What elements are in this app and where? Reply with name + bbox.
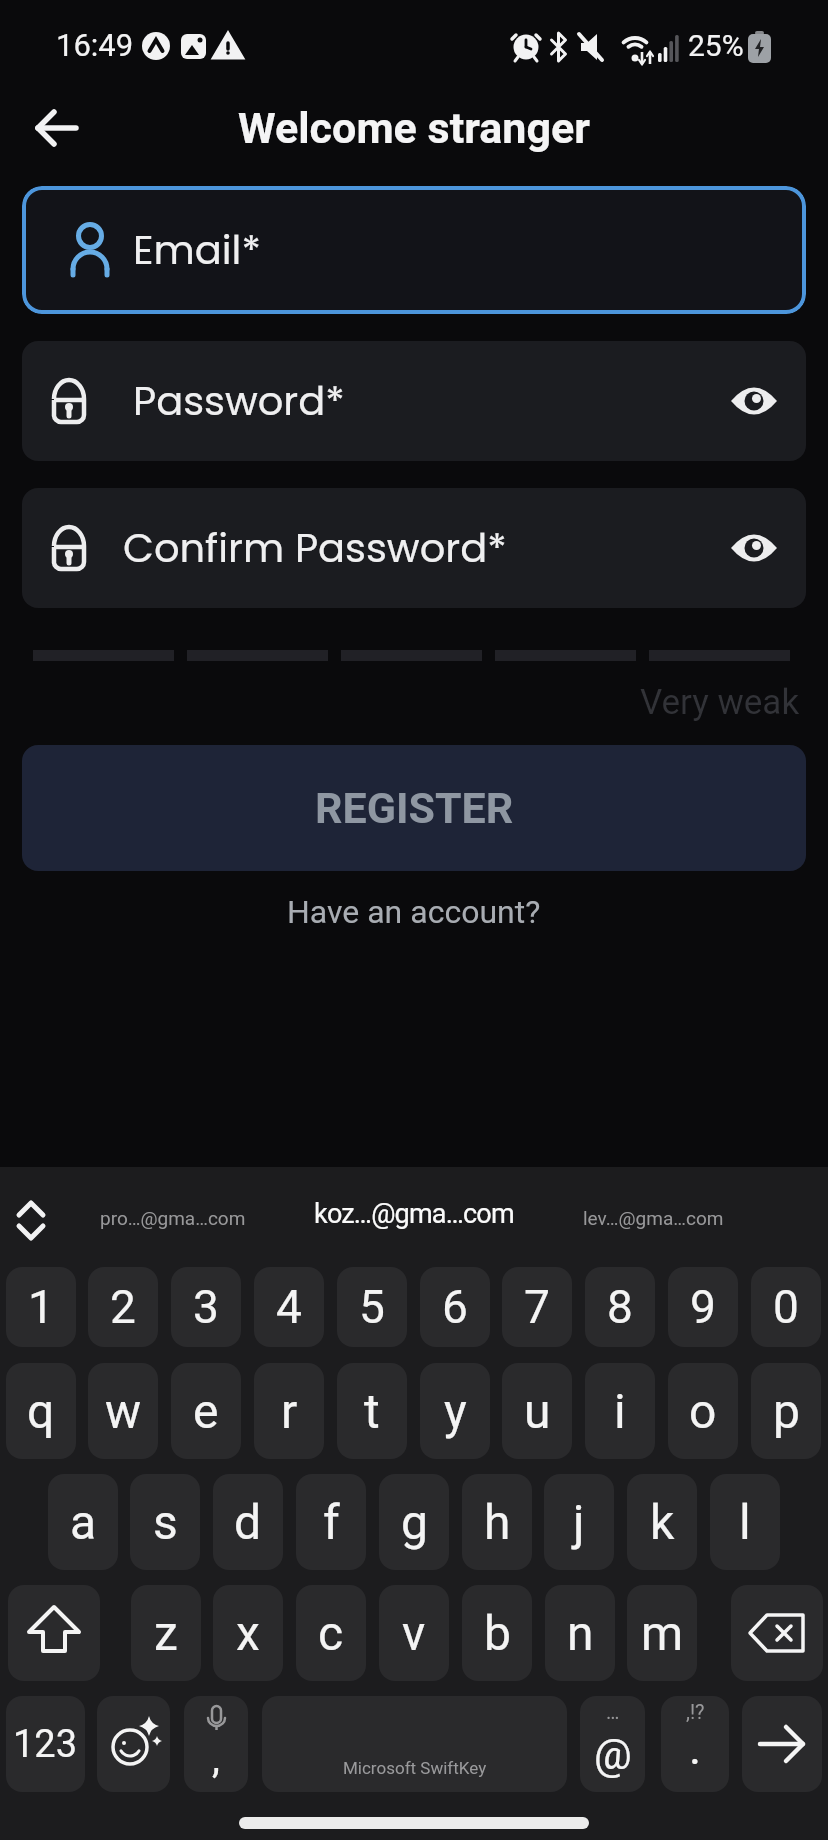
staticText: x [236,1605,260,1661]
button[interactable]: 1 [6,1267,76,1347]
button[interactable]: k [627,1474,697,1570]
staticText: n [567,1605,594,1661]
button[interactable]: Microsoft SwiftKey [262,1696,567,1792]
button[interactable]: y [420,1363,490,1459]
button[interactable]: d [213,1474,283,1570]
button[interactable]: c [296,1585,366,1681]
button[interactable]: i [585,1363,655,1459]
staticText: 25% [688,28,744,63]
staticText: s [153,1494,178,1550]
button[interactable]: Password* [22,341,806,461]
button[interactable]: o [668,1363,738,1459]
staticText: 4 [276,1280,302,1334]
staticText: z [154,1605,178,1661]
button[interactable]: p [751,1363,821,1459]
staticText: g [401,1494,428,1550]
staticText: e [193,1383,219,1439]
staticText: m [641,1605,684,1661]
button[interactable]: h [462,1474,532,1570]
staticText: d [234,1494,262,1550]
staticText: w [105,1383,142,1439]
button[interactable]: s [130,1474,200,1570]
button[interactable]: j [544,1474,614,1570]
staticText: pro…@gma…com [100,1207,246,1229]
staticText: 1 [28,1280,54,1334]
button[interactable]: 8 [585,1267,655,1347]
button[interactable]: Email* [22,186,806,314]
button[interactable] [20,96,90,160]
staticText: 123 [13,1722,78,1767]
staticText: REGISTER [315,783,514,833]
button[interactable]: … [580,1696,645,1792]
staticText: @ [594,1730,632,1779]
staticText: p [773,1383,800,1439]
button[interactable]: 5 [337,1267,407,1347]
button[interactable]: 6 [420,1267,490,1347]
button[interactable]: q [6,1363,76,1459]
staticText: 2 [110,1280,136,1334]
staticText: h [484,1494,511,1550]
button[interactable]: lev…@gma…com [563,1207,743,1229]
button[interactable]: b [462,1585,532,1681]
staticText: b [484,1605,511,1661]
button[interactable]: v [379,1585,449,1681]
button[interactable]: w [88,1363,158,1459]
staticText: Very weak [640,682,800,723]
staticText: … [606,1700,620,1723]
button[interactable]: Have an account? [287,893,541,931]
staticText: Email* [133,222,261,278]
staticText: k [650,1494,675,1550]
staticText: 3 [193,1280,219,1334]
button[interactable]: l [710,1474,780,1570]
button[interactable]: m [627,1585,697,1681]
button[interactable] [8,1585,100,1681]
button[interactable]: t [337,1363,407,1459]
button[interactable]: REGISTER [22,745,806,871]
button[interactable]: 9 [668,1267,738,1347]
staticText: j [573,1494,585,1550]
button[interactable]: koz…@gma…com [314,1198,514,1230]
button[interactable]: 7 [502,1267,572,1347]
staticText: 6 [442,1280,468,1334]
button[interactable]: 2 [88,1267,158,1347]
button[interactable] [731,1585,823,1681]
staticText: Confirm Password* [123,520,507,576]
staticText: Microsoft SwiftKey [343,1758,487,1778]
staticText: r [281,1383,298,1439]
button[interactable]: z [131,1585,201,1681]
button[interactable]: pro…@gma…com [83,1207,263,1229]
staticText: a [70,1494,97,1550]
staticText: 7 [524,1280,550,1334]
staticText: , [212,1735,220,1782]
staticText: 0 [773,1280,799,1334]
button[interactable]: 0 [751,1267,821,1347]
button[interactable] [742,1696,822,1792]
button[interactable]: a [48,1474,118,1570]
staticText: 16:49 [56,27,134,63]
button[interactable]: r [254,1363,324,1459]
staticText: ,!? [686,1700,705,1723]
button[interactable]: u [502,1363,572,1459]
button[interactable]: n [545,1585,615,1681]
button[interactable]: 3 [171,1267,241,1347]
button[interactable]: e [171,1363,241,1459]
button[interactable]: x [213,1585,283,1681]
staticText: koz…@gma…com [314,1198,514,1230]
button[interactable]: Confirm Password* [22,488,806,608]
staticText: lev…@gma…com [583,1207,724,1229]
staticText: 9 [690,1280,716,1334]
staticText: i [614,1383,626,1439]
button[interactable]: 123 [6,1696,85,1792]
staticText: Have an account? [287,893,541,931]
staticText: Password* [133,373,345,429]
button[interactable] [97,1696,170,1792]
staticText: 5 [359,1280,385,1334]
button[interactable]: ,!? [661,1696,729,1792]
button[interactable]: 4 [254,1267,324,1347]
button[interactable]: g [379,1474,449,1570]
button[interactable]: f [296,1474,366,1570]
staticText: 8 [607,1280,633,1334]
button[interactable]: , [184,1696,248,1792]
staticText: c [318,1605,344,1661]
staticText: . [689,1721,702,1775]
